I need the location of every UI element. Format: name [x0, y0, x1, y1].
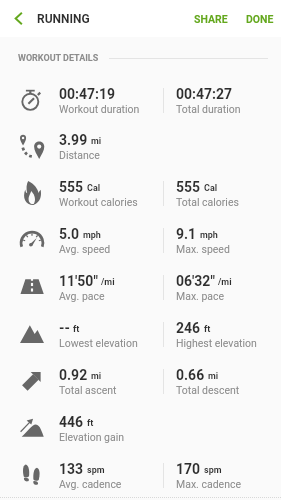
staticText: Cal [204, 183, 218, 194]
staticText: SHARE [194, 13, 228, 25]
staticText: Total ascent [59, 384, 117, 396]
staticText: 446 [59, 414, 84, 430]
staticText: -- [59, 320, 70, 336]
staticText: Max. pace [176, 290, 225, 302]
staticText: ft [73, 324, 80, 335]
staticText: spm [204, 465, 222, 476]
staticText: Workout calories [59, 196, 138, 208]
button[interactable]: Back [0, 0, 37, 37]
staticText: RUNNING [37, 12, 90, 26]
staticText: 06'32" [176, 273, 215, 289]
staticText: mph [83, 230, 101, 241]
staticText: Avg. cadence [59, 478, 122, 490]
staticText: mi [91, 136, 102, 147]
staticText: Max. cadence [176, 478, 242, 490]
staticText: mi [208, 371, 219, 382]
staticText: ft [87, 418, 94, 429]
button[interactable]: 133 [0, 451, 281, 498]
button[interactable]: 0.92 [0, 357, 281, 404]
staticText: 00:47:19 [59, 86, 116, 102]
button[interactable]: 3.99 [0, 122, 281, 169]
button[interactable]: 00:47:19 [0, 76, 281, 123]
staticText: 9.1 [176, 226, 197, 242]
button[interactable]: SHARE [185, 0, 237, 37]
staticText: 555 [59, 179, 84, 195]
staticText: 3.99 [59, 132, 88, 148]
staticText: DONE [246, 13, 274, 25]
button[interactable]: 555 [0, 169, 281, 216]
staticText: Highest elevation [176, 337, 257, 349]
staticText: Total descent [176, 384, 240, 396]
staticText: Lowest elevation [59, 337, 138, 349]
staticText: 133 [59, 461, 84, 477]
button[interactable]: -- [0, 310, 281, 357]
button[interactable]: 446 [0, 404, 281, 451]
staticText: 5.0 [59, 226, 80, 242]
staticText: 11'50" [59, 273, 98, 289]
staticText: mi [91, 371, 102, 382]
staticText: 246 [176, 320, 201, 336]
staticText: WORKOUT DETAILS [18, 53, 99, 64]
staticText: mph [200, 230, 218, 241]
staticText: Max. speed [176, 243, 230, 255]
staticText: 555 [176, 179, 201, 195]
staticText: ft [204, 324, 211, 335]
staticText: /mi [101, 277, 115, 288]
staticText: /mi [218, 277, 232, 288]
staticText: Avg. pace [59, 290, 105, 302]
staticText: Workout duration [59, 103, 140, 115]
staticText: Total duration [176, 103, 241, 115]
staticText: 00:47:27 [176, 86, 233, 102]
staticText: Avg. speed [59, 243, 111, 255]
button[interactable]: 5.0 [0, 216, 281, 263]
staticText: Cal [87, 183, 101, 194]
staticText: spm [87, 465, 105, 476]
button[interactable]: 11'50" [0, 263, 281, 310]
staticText: Total calories [176, 196, 239, 208]
staticText: Distance [59, 149, 100, 161]
staticText: 0.66 [176, 367, 205, 383]
staticText: 0.92 [59, 367, 88, 383]
staticText: Elevation gain [59, 431, 125, 443]
button[interactable]: DONE [237, 0, 281, 37]
staticText: 170 [176, 461, 201, 477]
